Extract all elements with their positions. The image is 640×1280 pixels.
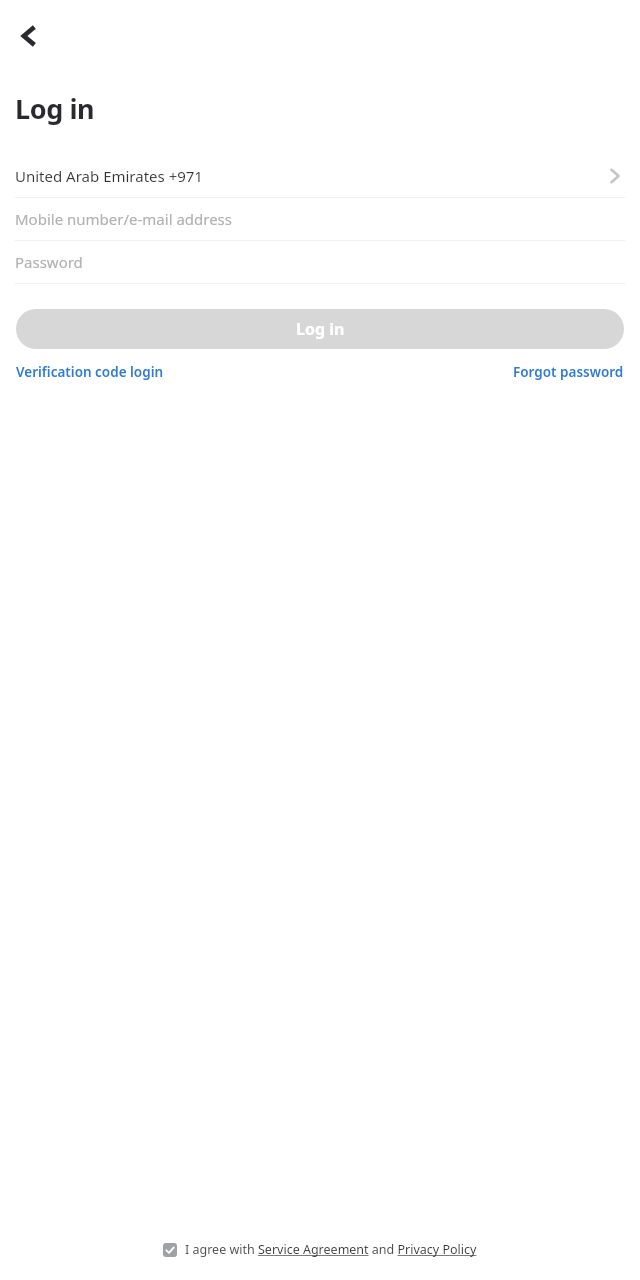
staticText: Mobile number/e-mail address bbox=[15, 209, 232, 229]
button[interactable]: United Arab Emirates +971 bbox=[0, 155, 640, 197]
staticText: United Arab Emirates +971 bbox=[15, 166, 203, 186]
button[interactable]: Verification code login bbox=[16, 360, 164, 384]
button[interactable]: Forgot password bbox=[513, 360, 624, 384]
staticText: Password bbox=[15, 252, 83, 272]
staticText: Verification code login bbox=[16, 363, 164, 381]
button[interactable]: Back bbox=[4, 12, 52, 60]
button[interactable]: I agree with Service Agreement and Priva… bbox=[185, 1241, 477, 1258]
staticText: Log in bbox=[296, 318, 345, 340]
button[interactable]: I agree checkbox bbox=[163, 1243, 177, 1257]
staticText: Log in bbox=[15, 90, 95, 127]
staticText: I agree with Service Agreement and Priva… bbox=[185, 1241, 477, 1258]
button[interactable]: Mobile number/e-mail address bbox=[0, 198, 640, 240]
button[interactable]: Log in bbox=[16, 309, 624, 349]
button[interactable]: Password bbox=[0, 241, 640, 283]
staticText: Forgot password bbox=[513, 363, 624, 381]
